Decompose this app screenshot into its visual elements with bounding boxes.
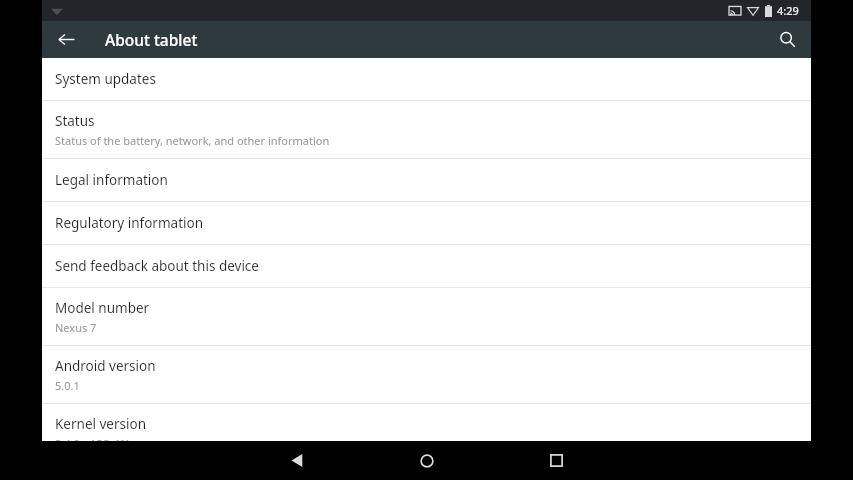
staticText: 4:29: [777, 3, 799, 18]
staticText: Regulatory information: [55, 214, 204, 232]
staticText: Legal information: [55, 171, 168, 189]
staticText: Status: [55, 112, 95, 130]
staticText: Status of the battery, network, and othe…: [55, 133, 330, 148]
button[interactable]: Home: [403, 441, 451, 480]
staticText: Model number: [55, 299, 150, 317]
button[interactable]: Android version: [42, 346, 811, 403]
staticText: Kernel version: [55, 415, 147, 433]
button[interactable]: Search: [763, 21, 811, 58]
staticText: Nexus 7: [55, 320, 97, 335]
button[interactable]: Regulatory information: [42, 202, 811, 244]
button[interactable]: Kernel version: [42, 404, 811, 441]
button[interactable]: System updates: [42, 58, 811, 100]
staticText: System updates: [55, 70, 156, 88]
button[interactable]: Send feedback about this device: [42, 245, 811, 287]
button[interactable]: Recent apps: [532, 441, 580, 480]
button[interactable]: Status: [42, 101, 811, 158]
staticText: About tablet: [105, 29, 198, 50]
button[interactable]: Back: [273, 441, 321, 480]
staticText: Send feedback about this device: [55, 257, 259, 275]
button[interactable]: Navigate up: [42, 21, 90, 58]
staticText: 5.0.1: [55, 378, 80, 393]
button[interactable]: Model number: [42, 288, 811, 345]
button[interactable]: Legal information: [42, 159, 811, 201]
staticText: 3.4.0-g15fb4f4: [55, 436, 130, 441]
staticText: Android version: [55, 357, 156, 375]
